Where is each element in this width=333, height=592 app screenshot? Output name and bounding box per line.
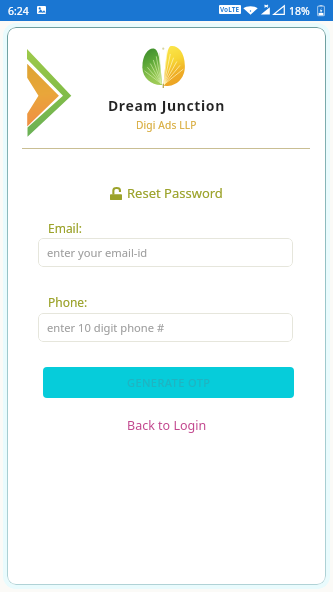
staticText: Phone: [48, 294, 88, 310]
staticText: GENERATE OTP [127, 375, 211, 390]
staticText: 18% [289, 4, 310, 18]
staticText: 6:24 [8, 4, 29, 18]
button[interactable]: enter 10 digit phone # [38, 313, 293, 342]
button[interactable]: enter your email-id [38, 238, 293, 267]
staticText: Dream Junction [108, 96, 225, 115]
staticText: VoLTE [220, 5, 240, 14]
staticText: enter your email-id [47, 245, 148, 260]
staticText: Reset Password [127, 184, 223, 202]
staticText: Back to Login [127, 417, 207, 434]
button[interactable]: GENERATE OTP [43, 367, 294, 398]
staticText: enter 10 digit phone # [47, 320, 165, 335]
button[interactable]: Back to Login [121, 414, 213, 437]
staticText: Digi Ads LLP [136, 118, 197, 132]
staticText: Email: [48, 220, 83, 236]
other: Reset password [110, 187, 122, 200]
